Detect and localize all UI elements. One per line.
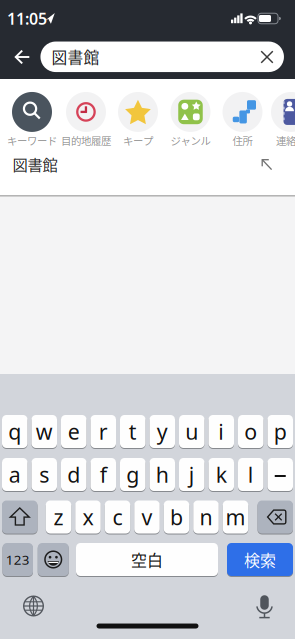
button[interactable]: x bbox=[75, 500, 101, 533]
staticText: x bbox=[82, 503, 93, 531]
staticText: s bbox=[39, 460, 49, 489]
staticText: 図書館 bbox=[51, 45, 99, 68]
button[interactable]: h bbox=[149, 458, 175, 491]
button[interactable]: 図書館 bbox=[0, 146, 295, 192]
staticText: 住所 bbox=[232, 133, 252, 148]
button[interactable]: t bbox=[120, 415, 145, 448]
staticText: キープ bbox=[123, 133, 153, 148]
button[interactable]: f bbox=[90, 458, 116, 491]
button[interactable]: ジャンル bbox=[170, 92, 210, 146]
staticText: d bbox=[67, 460, 80, 489]
staticText: m bbox=[225, 503, 245, 531]
button[interactable]: Back bbox=[6, 41, 38, 73]
button[interactable]: 住所 bbox=[222, 92, 262, 146]
button[interactable]: p bbox=[267, 415, 293, 448]
staticText: u bbox=[185, 417, 198, 446]
staticText: i bbox=[218, 417, 224, 446]
staticText: t bbox=[129, 417, 137, 446]
button[interactable]: Shift bbox=[2, 500, 37, 533]
button[interactable]: g bbox=[120, 458, 145, 491]
button[interactable]: Emoji bbox=[38, 543, 69, 576]
button[interactable]: k bbox=[208, 458, 234, 491]
button[interactable]: z bbox=[46, 500, 71, 533]
staticText: f bbox=[100, 460, 107, 489]
staticText: c bbox=[112, 503, 122, 531]
staticText: n bbox=[199, 503, 212, 531]
button[interactable]: o bbox=[238, 415, 263, 448]
button[interactable]: キープ bbox=[118, 92, 158, 146]
button[interactable]: 検索 bbox=[227, 543, 293, 576]
staticText: z bbox=[53, 503, 63, 531]
button[interactable]: Delete bbox=[257, 500, 293, 533]
button[interactable]: c bbox=[105, 500, 130, 533]
button[interactable]: 目的地履歴 bbox=[61, 92, 111, 146]
button[interactable]: キーワード bbox=[7, 92, 57, 146]
button[interactable]: n bbox=[193, 500, 219, 533]
button[interactable]: e bbox=[61, 415, 86, 448]
button[interactable]: w bbox=[31, 415, 57, 448]
button[interactable]: d bbox=[61, 458, 86, 491]
staticText: p bbox=[274, 417, 287, 446]
button[interactable]: r bbox=[90, 415, 116, 448]
staticText: 連絡先 bbox=[276, 133, 295, 148]
staticText: o bbox=[244, 417, 257, 446]
staticText: l bbox=[248, 460, 254, 489]
button[interactable]: b bbox=[164, 500, 189, 533]
button[interactable]: Dictate bbox=[252, 595, 277, 620]
staticText: 図書館 bbox=[12, 153, 57, 175]
staticText: 検索 bbox=[244, 548, 276, 571]
button[interactable]: j bbox=[179, 458, 204, 491]
button[interactable]: Search field: 図書館 bbox=[40, 41, 284, 72]
button[interactable]: y bbox=[149, 415, 175, 448]
button[interactable]: l bbox=[238, 458, 263, 491]
staticText: a bbox=[9, 460, 21, 489]
staticText: h bbox=[156, 460, 169, 489]
button[interactable]: 連絡先 bbox=[271, 92, 295, 146]
button[interactable]: ー bbox=[267, 458, 293, 491]
staticText: ジャンル bbox=[170, 133, 210, 148]
staticText: 目的地履歴 bbox=[61, 133, 111, 148]
staticText: e bbox=[68, 417, 80, 446]
staticText: キーワード bbox=[7, 133, 57, 148]
button[interactable]: 空白 bbox=[76, 543, 218, 576]
button[interactable]: m bbox=[223, 500, 248, 533]
button[interactable]: s bbox=[31, 458, 57, 491]
button[interactable]: Next keyboard bbox=[22, 595, 44, 617]
staticText: k bbox=[216, 460, 227, 489]
staticText: r bbox=[99, 417, 108, 446]
button[interactable]: 123 bbox=[2, 543, 33, 576]
staticText: b bbox=[170, 503, 183, 531]
button[interactable]: Clear text bbox=[252, 42, 282, 72]
staticText: 空白 bbox=[131, 548, 163, 571]
staticText: y bbox=[157, 417, 168, 446]
staticText: 11:05 bbox=[7, 8, 47, 29]
button[interactable]: v bbox=[134, 500, 160, 533]
button[interactable]: u bbox=[179, 415, 204, 448]
staticText: w bbox=[36, 417, 53, 446]
button[interactable]: i bbox=[208, 415, 234, 448]
button[interactable]: q bbox=[2, 415, 27, 448]
staticText: 123 bbox=[6, 551, 30, 568]
staticText: v bbox=[141, 503, 152, 531]
staticText: g bbox=[126, 460, 139, 489]
staticText: q bbox=[8, 417, 21, 446]
staticText: j bbox=[189, 460, 195, 489]
button[interactable]: a bbox=[2, 458, 27, 491]
